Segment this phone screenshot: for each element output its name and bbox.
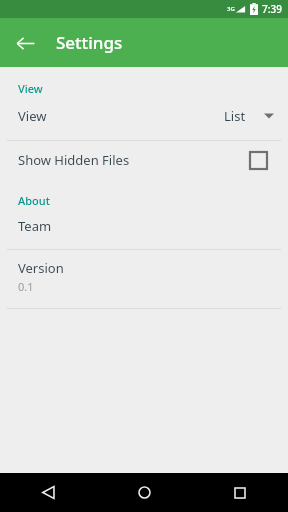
button[interactable]: Version — [0, 259, 288, 294]
staticText: Version — [18, 259, 64, 277]
staticText: View — [18, 81, 43, 96]
staticText: Show Hidden Files — [18, 151, 130, 169]
button[interactable]: View — [0, 98, 288, 134]
staticText: 0.1 — [18, 279, 34, 294]
other: Show Hidden Files checkbox — [249, 151, 268, 170]
staticText: 3G — [227, 5, 235, 13]
button[interactable]: Recent apps — [192, 473, 288, 512]
button[interactable]: Back — [0, 473, 96, 512]
staticText: View — [18, 107, 47, 125]
staticText: 7:39 — [262, 2, 282, 16]
button[interactable]: Show Hidden Files — [0, 141, 288, 179]
button[interactable]: Home — [96, 473, 192, 512]
button[interactable]: Team — [0, 210, 288, 242]
staticText: List — [224, 107, 246, 125]
staticText: Settings — [56, 31, 123, 54]
button[interactable]: Back — [8, 26, 42, 60]
staticText: About — [18, 193, 50, 208]
staticText: Team — [18, 217, 52, 235]
